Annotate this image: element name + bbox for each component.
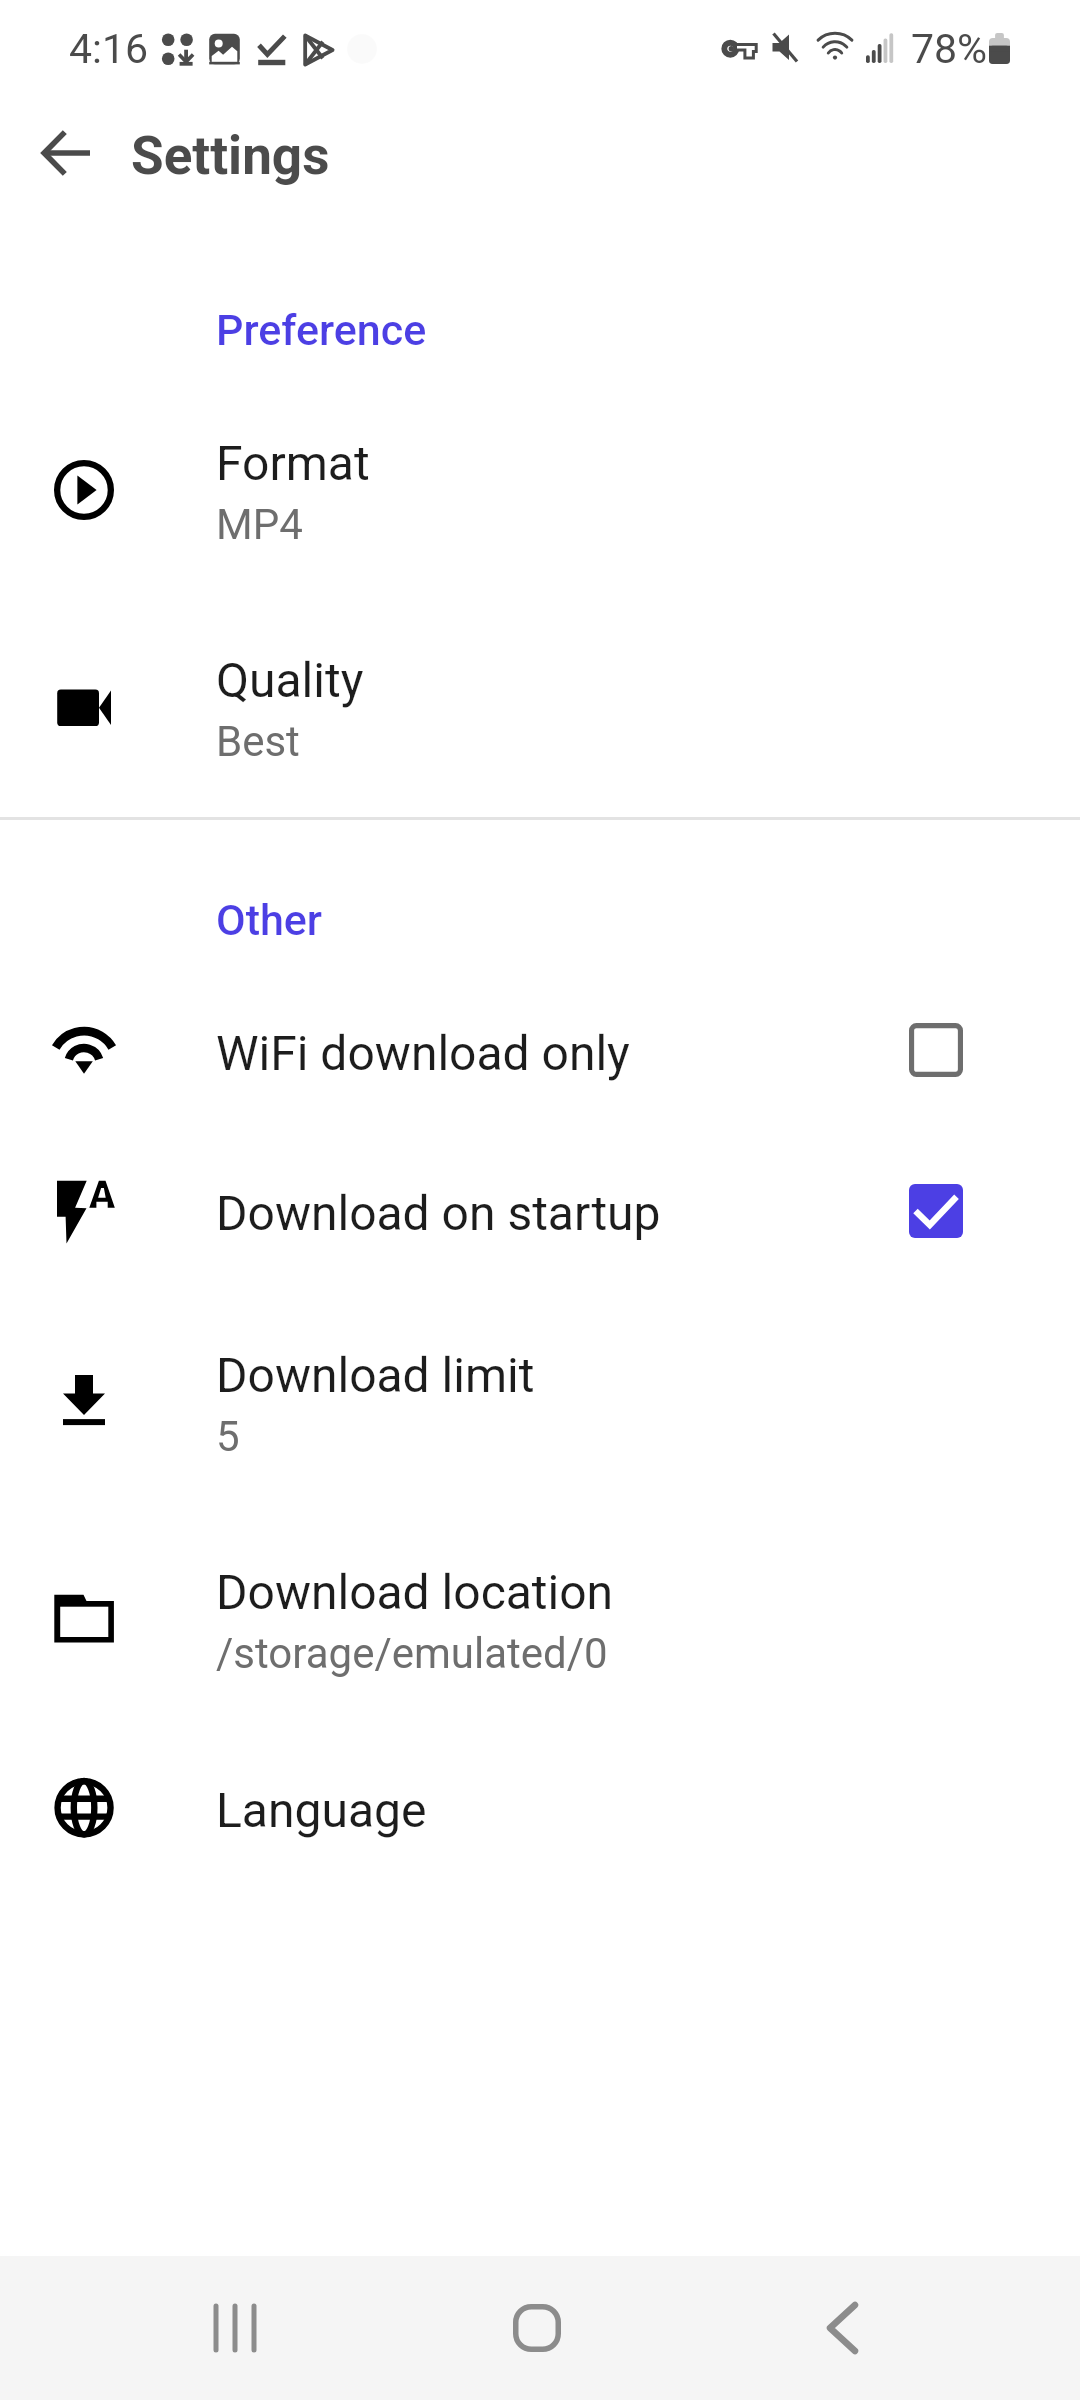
- button[interactable]: Download location: [0, 1530, 1080, 1748]
- staticText: Settings: [131, 125, 330, 187]
- button[interactable]: Quality: [0, 618, 1080, 836]
- button[interactable]: Enabled: [900, 1175, 972, 1247]
- button[interactable]: Language: [0, 1748, 1080, 1908]
- staticText: Language: [216, 1782, 427, 1838]
- staticText: Other: [216, 895, 323, 945]
- staticText: MP4: [216, 500, 303, 549]
- button[interactable]: Home: [477, 2256, 597, 2400]
- staticText: /storage/emulated/0: [216, 1629, 608, 1678]
- button[interactable]: Download on startup: [0, 1151, 1080, 1311]
- staticText: Format: [216, 435, 370, 491]
- staticText: Download limit: [216, 1347, 535, 1403]
- button[interactable]: Recent apps: [175, 2256, 295, 2400]
- button[interactable]: Format: [0, 401, 1080, 619]
- staticText: Download location: [216, 1564, 614, 1620]
- button[interactable]: WiFi download only: [0, 991, 1080, 1151]
- staticText: Best: [216, 717, 300, 766]
- button[interactable]: Back: [782, 2256, 902, 2400]
- staticText: Quality: [216, 652, 364, 708]
- staticText: 78%: [911, 25, 988, 73]
- button[interactable]: Disabled: [900, 1014, 972, 1086]
- button[interactable]: Back: [18, 105, 114, 201]
- button[interactable]: Download limit: [0, 1313, 1080, 1531]
- staticText: 4:16: [69, 25, 149, 73]
- staticText: 5: [216, 1412, 240, 1461]
- staticText: Download on startup: [216, 1185, 661, 1241]
- staticText: Preference: [216, 305, 427, 355]
- staticText: WiFi download only: [216, 1025, 630, 1081]
